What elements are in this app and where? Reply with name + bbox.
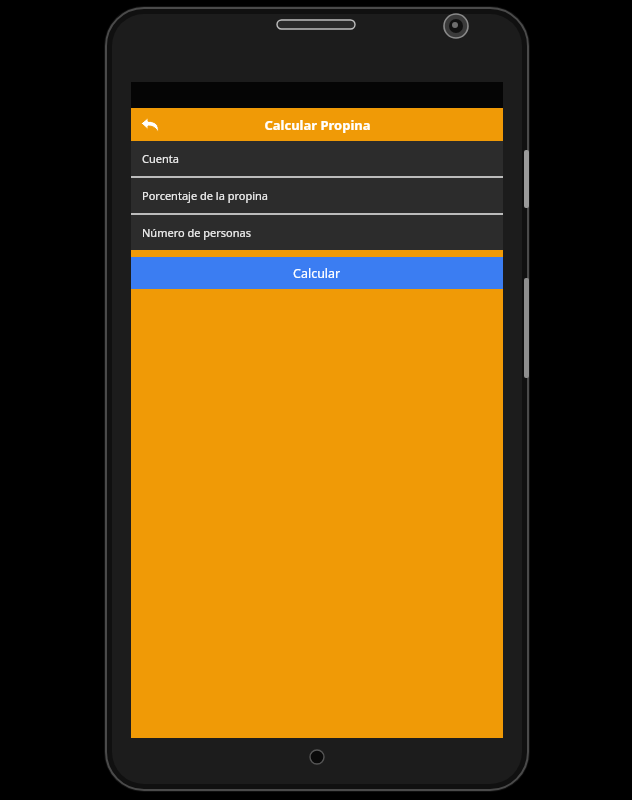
staticText: Calcular Propina [264,116,371,134]
staticText: Porcentaje de la propina [142,188,268,203]
staticText: Cuenta [142,151,179,166]
button[interactable]: Calcular [131,257,503,289]
button[interactable]: Porcentaje de la propina [131,178,503,213]
staticText: Número de personas [142,225,251,240]
button[interactable]: Back [135,110,165,140]
staticText: Calcular [293,265,341,282]
button[interactable]: Número de personas [131,215,503,250]
button[interactable]: Cuenta [131,141,503,176]
